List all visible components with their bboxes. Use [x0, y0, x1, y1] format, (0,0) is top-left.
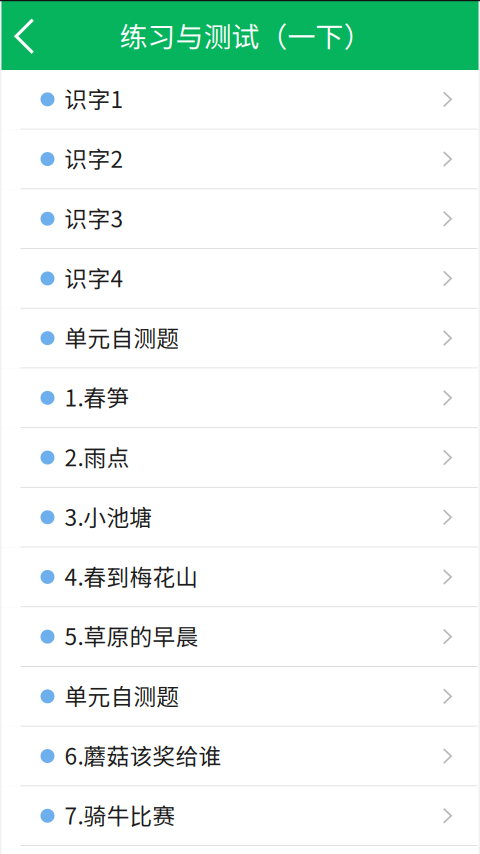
button[interactable]: 7.骑牛比赛: [1, 786, 478, 846]
button[interactable]: 3.小池塘: [1, 488, 478, 548]
staticText: 3.小池塘: [64, 500, 152, 532]
staticText: 练习与测试（一下）: [119, 15, 371, 55]
button[interactable]: 1.春笋: [1, 368, 478, 428]
button[interactable]: 5.草原的早晨: [1, 607, 478, 667]
button[interactable]: 单元自测题: [1, 309, 478, 368]
staticText: 识字3: [64, 201, 123, 234]
staticText: 识字2: [64, 141, 123, 174]
staticText: 识字4: [64, 261, 123, 294]
button[interactable]: 识字2: [1, 130, 478, 189]
staticText: 单元自测题: [64, 320, 179, 353]
button[interactable]: 识字3: [1, 189, 478, 249]
button[interactable]: 识字4: [1, 249, 478, 309]
staticText: 2.雨点: [64, 440, 129, 473]
staticText: 4.春到梅花山: [64, 559, 198, 592]
staticText: 单元自测题: [64, 679, 179, 711]
staticText: 5.草原的早晨: [64, 619, 198, 652]
button[interactable]: 单元自测题: [1, 667, 478, 727]
staticText: 7.骑牛比赛: [64, 798, 175, 831]
button[interactable]: 识字1: [1, 70, 478, 130]
staticText: 识字1: [64, 82, 123, 114]
staticText: 6.蘑菇该奖给谁: [64, 738, 221, 771]
button[interactable]: Back: [1, 0, 47, 70]
button[interactable]: 2.雨点: [1, 428, 478, 488]
staticText: 1.春笋: [64, 380, 129, 413]
button[interactable]: 4.春到梅花山: [1, 548, 478, 607]
button[interactable]: 6.蘑菇该奖给谁: [1, 727, 478, 786]
